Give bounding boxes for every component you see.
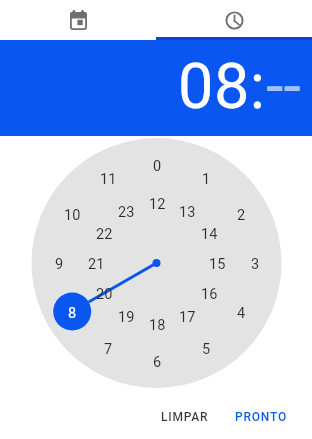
- staticText: 4: [237, 305, 246, 322]
- staticText: 0: [153, 158, 162, 175]
- staticText: 14: [201, 226, 218, 243]
- button[interactable]: PRONTO: [227, 400, 296, 434]
- staticText: 20: [96, 286, 113, 303]
- staticText: PRONTO: [235, 410, 288, 424]
- staticText: 16: [201, 286, 218, 303]
- staticText: 22: [96, 226, 113, 243]
- staticText: 18: [149, 317, 166, 334]
- staticText: 13: [179, 204, 196, 221]
- staticText: 3: [251, 256, 260, 273]
- staticText: LIMPAR: [161, 410, 209, 424]
- staticText: 19: [118, 309, 135, 326]
- staticText: 1: [202, 171, 211, 188]
- staticText: 15: [209, 256, 226, 273]
- staticText: 7: [104, 341, 113, 358]
- staticText: 12: [149, 196, 166, 213]
- staticText: 10: [64, 207, 81, 224]
- staticText: 8: [68, 305, 77, 322]
- staticText: --: [266, 50, 301, 124]
- staticText: 6: [153, 354, 162, 371]
- staticText: 23: [118, 204, 135, 221]
- staticText: 9: [55, 256, 64, 273]
- button[interactable]: [0, 0, 156, 40]
- staticText: 08:: [178, 50, 266, 124]
- staticText: 5: [202, 341, 211, 358]
- button[interactable]: LIMPAR: [153, 400, 217, 434]
- staticText: 21: [88, 256, 105, 273]
- button[interactable]: [156, 0, 312, 40]
- staticText: 11: [100, 171, 117, 188]
- staticText: 2: [237, 207, 246, 224]
- staticText: 17: [179, 309, 196, 326]
